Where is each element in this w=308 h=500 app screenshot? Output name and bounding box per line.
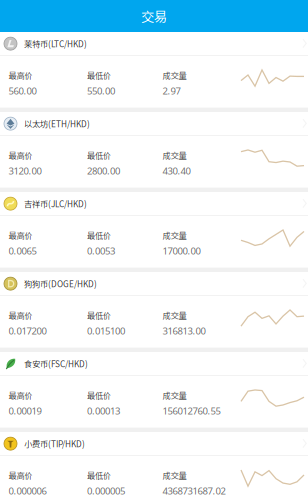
staticText: 0.0065 <box>9 244 37 257</box>
staticText: 156012760.55 <box>162 404 220 417</box>
button[interactable]: 以太坊(ETH/HKD) <box>0 112 308 188</box>
staticText: 430.40 <box>162 164 190 177</box>
staticText: 最低价 <box>87 469 111 481</box>
staticText: 3120.00 <box>9 164 42 177</box>
staticText: 小费币(TIP/HKD) <box>24 438 85 450</box>
staticText: 最高价 <box>9 149 33 161</box>
staticText: 0.00013 <box>87 404 120 417</box>
staticText: 食安币(FSC/HKD) <box>24 358 88 370</box>
staticText: 0.00019 <box>9 404 42 417</box>
staticText: 17000.00 <box>162 244 200 257</box>
staticText: 成交量 <box>162 469 186 481</box>
button[interactable]: 吉祥币(JLC/HKD) <box>0 192 308 268</box>
staticText: 成交量 <box>162 229 186 241</box>
staticText: 最高价 <box>9 229 33 241</box>
staticText: 以太坊(ETH/HKD) <box>24 118 90 130</box>
staticText: 成交量 <box>162 69 186 81</box>
staticText: 0.0053 <box>87 244 115 257</box>
staticText: 2800.00 <box>87 164 120 177</box>
staticText: 4368731687.02 <box>162 484 225 497</box>
staticText: 最高价 <box>9 309 33 321</box>
staticText: 成交量 <box>162 149 186 161</box>
staticText: 最低价 <box>87 69 111 81</box>
staticText: 最低价 <box>87 229 111 241</box>
staticText: 狗狗币(DOGE/HKD) <box>24 278 97 290</box>
staticText: 0.000006 <box>9 484 47 497</box>
staticText: 最高价 <box>9 389 33 401</box>
staticText: 最低价 <box>87 389 111 401</box>
staticText: 最低价 <box>87 309 111 321</box>
staticText: 550.00 <box>87 84 115 97</box>
button[interactable]: 食安币(FSC/HKD) <box>0 352 308 428</box>
button[interactable]: 小费币(TIP/HKD) <box>0 432 308 500</box>
button[interactable]: 莱特币(LTC/HKD) <box>0 32 308 108</box>
staticText: 0.017200 <box>9 324 47 337</box>
staticText: 交易 <box>141 6 167 26</box>
staticText: 2.97 <box>162 84 180 97</box>
staticText: 吉祥币(JLC/HKD) <box>24 198 87 210</box>
staticText: 最低价 <box>87 149 111 161</box>
staticText: 成交量 <box>162 389 186 401</box>
staticText: 最高价 <box>9 69 33 81</box>
staticText: 成交量 <box>162 309 186 321</box>
staticText: 最高价 <box>9 469 33 481</box>
staticText: 0.015100 <box>87 324 125 337</box>
button[interactable]: 狗狗币(DOGE/HKD) <box>0 272 308 348</box>
staticText: 316813.00 <box>162 324 205 337</box>
staticText: 0.000005 <box>87 484 125 497</box>
staticText: 莱特币(LTC/HKD) <box>24 38 87 50</box>
staticText: 560.00 <box>9 84 37 97</box>
